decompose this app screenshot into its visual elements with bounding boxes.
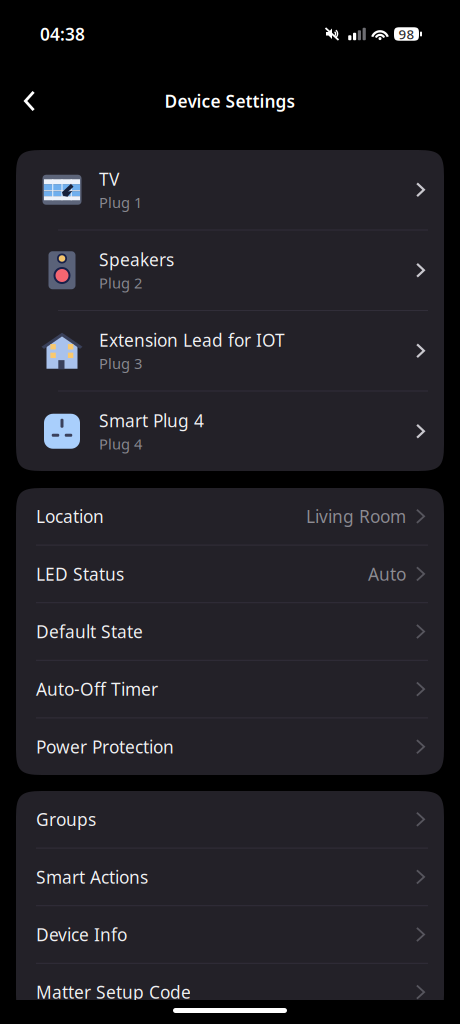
staticText: 04:38 [40,22,85,45]
staticText: Plug 4 [99,434,142,453]
button[interactable]: Location [16,488,444,545]
staticText: Plug 3 [99,353,142,373]
button[interactable]: Back [13,79,46,122]
staticText: Speakers [99,248,174,271]
staticText: LED Status [36,562,124,585]
button[interactable]: Matter Setup Code [16,964,444,1020]
staticText: Power Protection [36,735,174,758]
staticText: Extension Lead for IOT [99,328,285,351]
staticText: Living Room [306,505,406,528]
button[interactable]: Smart Actions [16,849,444,905]
staticText: Plug 2 [99,273,142,292]
button[interactable]: Power Protection [16,718,444,775]
staticText: Device Info [36,923,127,946]
button[interactable]: Groups [16,791,444,848]
staticText: Smart Plug 4 [99,409,204,432]
staticText: Groups [36,808,96,831]
staticText: Auto-Off Timer [36,678,158,701]
staticText: Smart Actions [36,865,148,888]
staticText: Matter Setup Code [36,981,191,1004]
button[interactable]: LED Status [16,546,444,602]
button[interactable]: Smart Plug 4 [16,391,444,471]
staticText: Location [36,505,104,528]
staticText: 98 [398,25,414,43]
button[interactable]: Default State [16,603,444,660]
staticText: Default State [36,620,143,643]
staticText: Plug 1 [99,192,142,212]
button[interactable]: Speakers [16,230,444,310]
staticText: Device Settings [164,89,295,112]
button[interactable]: TV [16,150,444,229]
button[interactable]: Extension Lead for IOT [16,311,444,390]
staticText: Auto [368,562,406,585]
button[interactable]: Device Info [16,906,444,963]
button[interactable]: Auto-Off Timer [16,661,444,717]
staticText: TV [99,167,119,190]
